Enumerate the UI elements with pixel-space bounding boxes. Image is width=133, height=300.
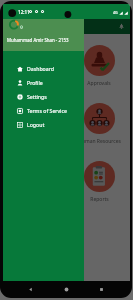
staticText: Profile [27, 79, 43, 86]
button[interactable]: Home [61, 284, 72, 295]
button[interactable]: Reports [70, 161, 128, 203]
button[interactable]: Logout [3, 117, 84, 131]
staticText: Terms of Service [27, 107, 67, 114]
button[interactable]: Settings [3, 89, 84, 103]
button[interactable]: Workforce [5, 103, 62, 145]
button[interactable]: Terms of Service [3, 103, 84, 117]
staticText: Settings [27, 93, 47, 100]
button[interactable]: Dashboard [3, 61, 84, 75]
staticText: Logout [27, 121, 45, 128]
staticText: 12:11 [18, 9, 30, 15]
staticText: 4G [113, 10, 118, 15]
button[interactable]: Notifications [115, 20, 127, 32]
staticText: Dashboard [27, 65, 54, 72]
button[interactable]: Profile [3, 75, 84, 89]
staticText: Reports [90, 196, 109, 203]
staticText: Human Resources [78, 138, 121, 145]
button[interactable]: Human Resources [70, 103, 128, 145]
staticText: Approvals [87, 80, 111, 87]
button[interactable]: Approvals [70, 45, 128, 87]
staticText: Muhammad Amir Shan - 2153 [7, 37, 69, 43]
staticText: Inventory [22, 80, 45, 87]
button[interactable]: Inventory [5, 45, 62, 87]
button[interactable]: Recents [96, 284, 107, 295]
button[interactable]: Back [25, 284, 36, 295]
